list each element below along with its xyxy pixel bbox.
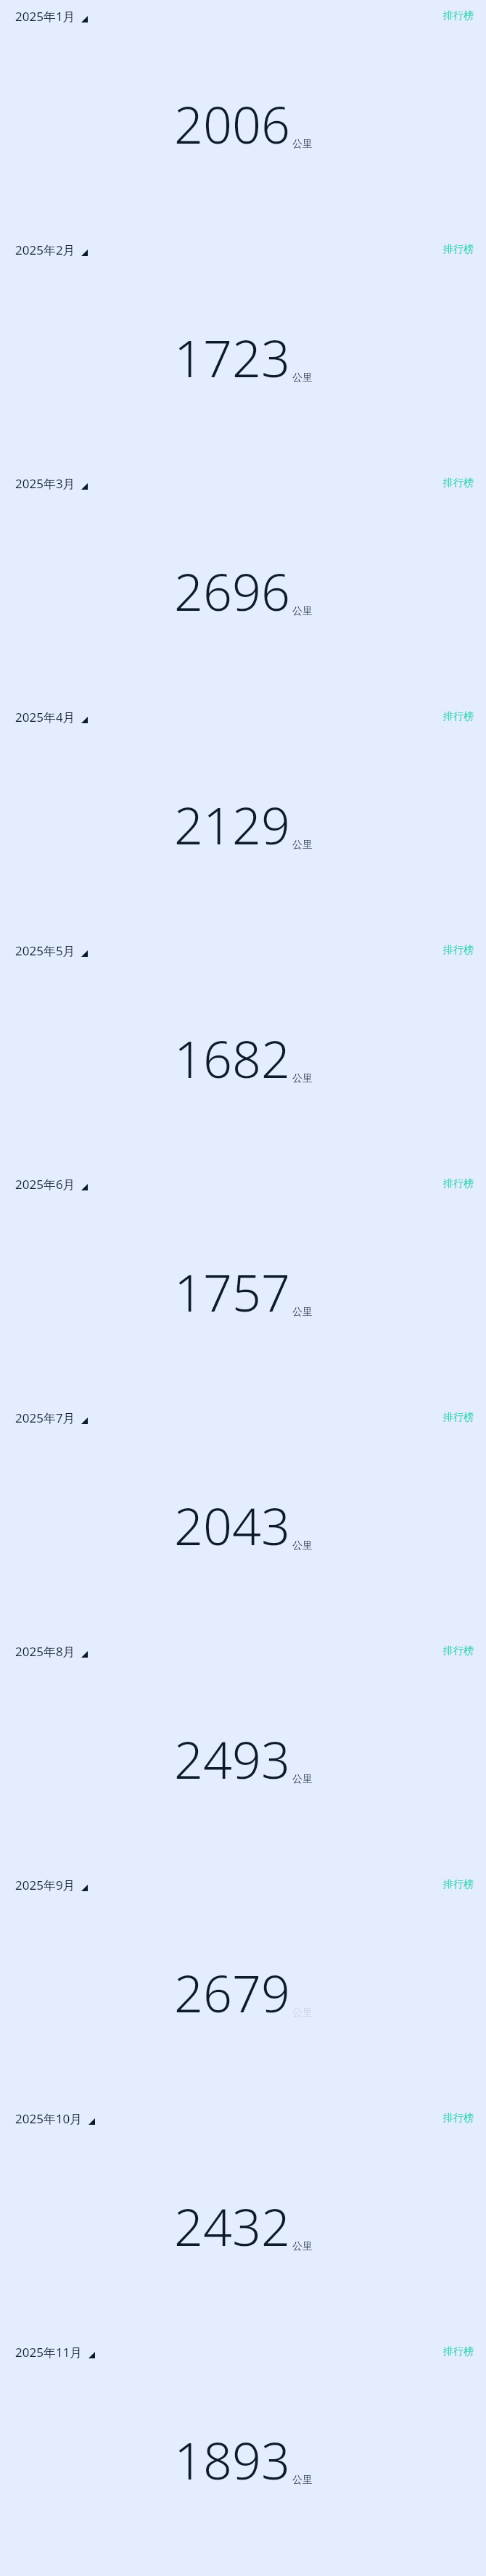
other: Select month (81, 1184, 88, 1190)
other: Select month (88, 2118, 95, 2125)
staticText: 公里 (292, 1773, 313, 1786)
other: Select month (81, 717, 88, 723)
staticText: 2696 (174, 556, 290, 625)
staticText: 1723 (174, 323, 290, 392)
staticText: 公里 (292, 839, 313, 852)
button[interactable]: 排行榜 (433, 1875, 486, 1895)
button[interactable]: 2025年10月 (11, 2108, 101, 2129)
button[interactable]: 排行榜 (433, 2342, 486, 2362)
staticText: 2025年3月 (15, 475, 75, 492)
staticText: 排行榜 (443, 1411, 474, 1424)
other: Select month (81, 483, 88, 490)
button[interactable]: 排行榜 (433, 707, 486, 727)
other: Select month (81, 1651, 88, 1658)
staticText: 公里 (292, 2474, 313, 2487)
staticText: 排行榜 (443, 9, 474, 22)
staticText: 2025年2月 (15, 242, 75, 258)
staticText: 2025年4月 (15, 709, 75, 725)
button[interactable]: 2025年11月 (11, 2342, 101, 2363)
staticText: 2025年9月 (15, 1877, 75, 1893)
button[interactable]: 排行榜 (433, 1641, 486, 1661)
staticText: 2025年5月 (15, 942, 75, 959)
staticText: 2006 (174, 89, 290, 158)
staticText: 公里 (292, 2240, 313, 2253)
staticText: 2025年1月 (15, 8, 75, 25)
button[interactable]: 排行榜 (433, 473, 486, 493)
button[interactable]: 2025年2月 (11, 239, 94, 260)
staticText: 公里 (292, 1306, 313, 1319)
other: Select month (81, 16, 88, 22)
staticText: 排行榜 (443, 1878, 474, 1891)
button[interactable]: 排行榜 (433, 6, 486, 26)
staticText: 公里 (292, 2007, 313, 2020)
staticText: 2043 (174, 1491, 290, 1560)
button[interactable]: 2025年9月 (11, 1875, 94, 1896)
staticText: 排行榜 (443, 477, 474, 490)
button[interactable]: 排行榜 (433, 1407, 486, 1428)
staticText: 2025年8月 (15, 1643, 75, 1660)
staticText: 公里 (292, 1539, 313, 1552)
staticText: 2432 (174, 2192, 290, 2260)
button[interactable]: 2025年4月 (11, 707, 94, 728)
staticText: 公里 (292, 605, 313, 618)
staticText: 公里 (292, 371, 313, 384)
other: Select month (81, 950, 88, 957)
staticText: 1682 (174, 1024, 290, 1092)
other: Select month (81, 1885, 88, 1891)
staticText: 排行榜 (443, 1177, 474, 1190)
staticText: 2025年7月 (15, 1410, 75, 1426)
staticText: 2025年11月 (15, 2344, 83, 2361)
staticText: 1893 (174, 2425, 290, 2494)
button[interactable]: 排行榜 (433, 2108, 486, 2128)
staticText: 公里 (292, 1072, 313, 1085)
staticText: 排行榜 (443, 243, 474, 256)
button[interactable]: 2025年3月 (11, 473, 94, 494)
staticText: 排行榜 (443, 944, 474, 957)
button[interactable]: 排行榜 (433, 1174, 486, 1194)
button[interactable]: 2025年6月 (11, 1174, 94, 1195)
staticText: 2129 (174, 790, 290, 859)
button[interactable]: 排行榜 (433, 940, 486, 960)
staticText: 排行榜 (443, 710, 474, 723)
staticText: 公里 (292, 138, 313, 151)
staticText: 排行榜 (443, 2345, 474, 2358)
button[interactable]: 排行榜 (433, 239, 486, 260)
other: Select month (81, 250, 88, 256)
button[interactable]: 2025年7月 (11, 1407, 94, 1428)
button[interactable]: 2025年8月 (11, 1641, 94, 1662)
staticText: 2025年10月 (15, 2110, 83, 2127)
button[interactable]: 2025年1月 (11, 6, 94, 27)
staticText: 2493 (174, 1724, 290, 1793)
staticText: 2025年6月 (15, 1176, 75, 1193)
other: Select month (81, 1417, 88, 1424)
button[interactable]: 2025年5月 (11, 940, 94, 961)
staticText: 排行榜 (443, 1645, 474, 1658)
staticText: 1757 (174, 1257, 290, 1326)
other: Select month (88, 2352, 95, 2358)
staticText: 2679 (174, 1958, 290, 2027)
staticText: 排行榜 (443, 2112, 474, 2125)
